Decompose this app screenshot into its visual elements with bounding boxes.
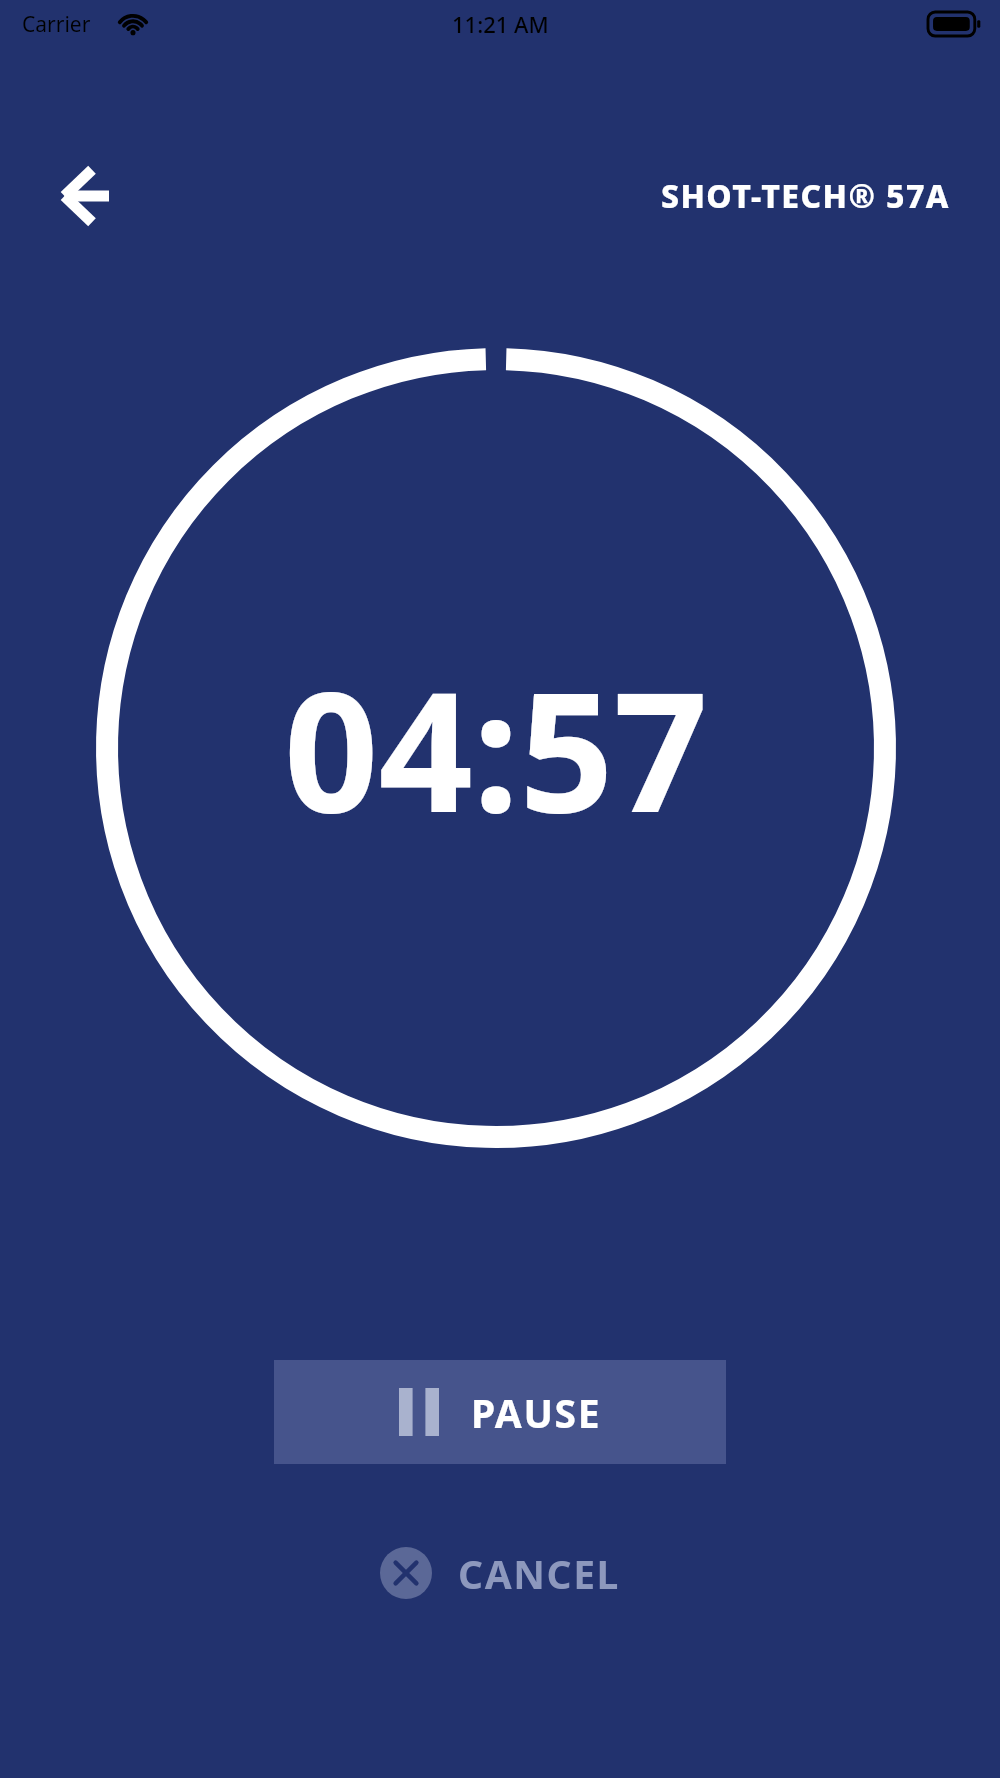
button[interactable]: CANCEL <box>380 1538 621 1608</box>
staticText: Carrier <box>22 10 91 39</box>
button[interactable]: PAUSE <box>274 1360 726 1464</box>
staticText: 04:57 <box>284 636 708 861</box>
staticText: SHOT-TECH® 57A <box>661 174 950 218</box>
staticText: CANCEL <box>458 1547 621 1600</box>
staticText: 11:21 AM <box>452 9 549 39</box>
staticText: PAUSE <box>471 1386 602 1439</box>
button[interactable]: Back <box>46 158 122 234</box>
